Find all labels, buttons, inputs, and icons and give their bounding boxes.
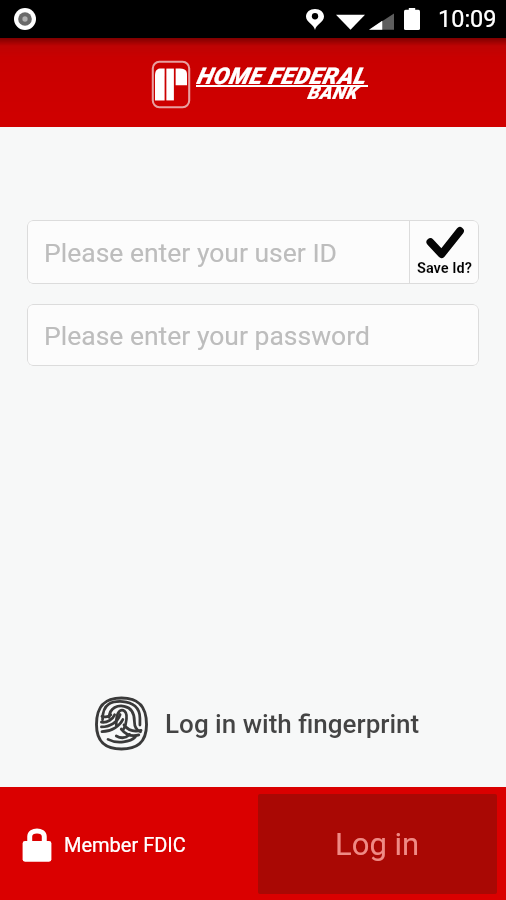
staticText: Please enter your password xyxy=(44,320,370,351)
button[interactable]: Member FDIC xyxy=(22,826,186,862)
staticText: 10:09 xyxy=(438,5,497,33)
button[interactable]: Save Id xyxy=(410,220,479,284)
button[interactable]: Log in xyxy=(258,794,497,894)
staticText: Member FDIC xyxy=(64,833,186,856)
staticText: HOME FEDERAL xyxy=(196,63,366,90)
staticText: Save Id? xyxy=(417,260,472,277)
staticText: BANK xyxy=(307,82,358,104)
button[interactable]: Please enter your user ID xyxy=(27,220,409,284)
staticText: Log in with fingerprint xyxy=(165,709,420,739)
button[interactable]: Log in with fingerprint xyxy=(94,697,420,750)
staticText: Please enter your user ID xyxy=(44,237,338,268)
button[interactable]: Please enter your password xyxy=(27,304,479,366)
staticText: Log in xyxy=(335,826,420,862)
